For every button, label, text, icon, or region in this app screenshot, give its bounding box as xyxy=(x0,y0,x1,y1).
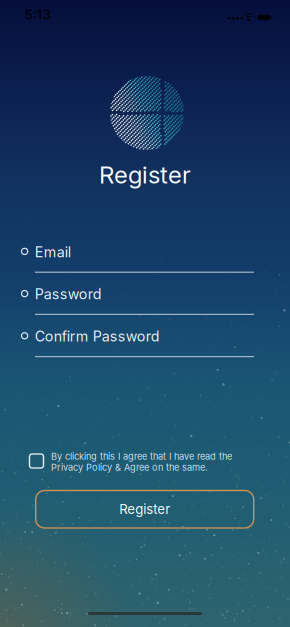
staticText: Email xyxy=(35,243,71,261)
staticText: Register xyxy=(119,501,170,517)
staticText: 5:13 xyxy=(24,6,51,23)
staticText: Register xyxy=(99,160,191,189)
button[interactable]: Confirm Password xyxy=(0,0,219,17)
staticText: Confirm Password xyxy=(35,328,160,345)
staticText: Privacy Policy & Agree on the same. xyxy=(51,462,208,473)
button[interactable]: Email xyxy=(0,0,219,17)
button[interactable]: Register xyxy=(36,490,254,528)
staticText: Password xyxy=(35,285,102,303)
button[interactable]: By clicking this I agree that I have rea… xyxy=(0,0,181,14)
staticText: By clicking this I agree that I have rea… xyxy=(51,451,232,462)
button[interactable]: Password xyxy=(0,0,219,17)
